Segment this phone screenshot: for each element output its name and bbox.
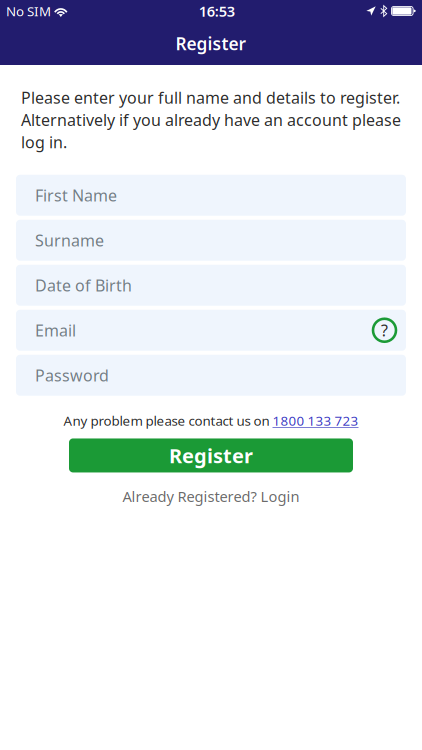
staticText: ? [381, 320, 388, 341]
staticText: Register [175, 32, 246, 55]
staticText: Surname [35, 230, 104, 251]
staticText: Please enter your full name and details … [21, 87, 401, 153]
staticText: Password [35, 365, 109, 386]
staticText: 1800 133 723 [272, 412, 358, 429]
staticText: Already Registered? Login [122, 486, 299, 506]
button[interactable]: Register [69, 438, 353, 472]
button[interactable]: Email help [373, 319, 396, 342]
staticText: Any problem please contact us on [63, 412, 272, 429]
staticText: No SIM [6, 2, 51, 20]
staticText: Email [35, 320, 76, 341]
staticText: Register [169, 442, 253, 469]
button[interactable]: 1800 133 723 [272, 412, 358, 429]
staticText: First Name [35, 185, 117, 206]
staticText: 16:53 [199, 1, 235, 21]
button[interactable]: Already Registered? Login [0, 486, 422, 506]
staticText: Date of Birth [35, 275, 132, 296]
